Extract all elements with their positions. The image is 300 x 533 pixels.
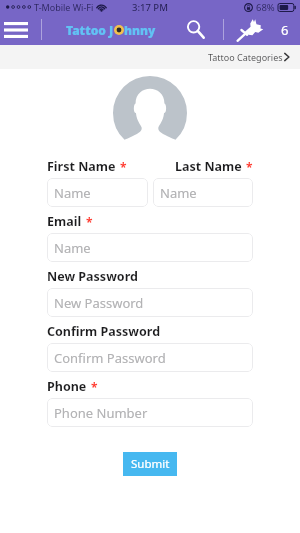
button[interactable]: Phone Number [47, 398, 253, 427]
button[interactable]: Search [179, 14, 211, 45]
staticText: Submit [131, 456, 170, 472]
button[interactable]: Name [153, 178, 253, 207]
staticText: Confirm Password [54, 349, 166, 367]
staticText: 68% [256, 1, 275, 14]
button[interactable]: Confirm Password [47, 343, 253, 372]
staticText: hnny [124, 22, 156, 38]
staticText: * [86, 214, 93, 230]
staticText: New Password [54, 294, 144, 312]
button[interactable]: Open navigation menu [0, 14, 31, 45]
staticText: Confirm Password [47, 323, 161, 340]
staticText: * [91, 379, 98, 395]
staticText: Tattoo Categories [208, 51, 283, 63]
staticText: Last Name [175, 158, 242, 175]
button[interactable]: Tattoo Categories [0, 45, 300, 69]
staticText: * [246, 159, 253, 175]
staticText: First Name [47, 158, 116, 175]
button[interactable]: Name [47, 178, 148, 207]
staticText: Phone [47, 378, 87, 395]
staticText: Name [54, 239, 91, 257]
button[interactable]: Tattoo machine [232, 14, 270, 45]
button[interactable]: Name [47, 233, 253, 262]
staticText: T-Mobile Wi-Fi [34, 1, 94, 13]
button[interactable]: 6 [270, 14, 300, 45]
staticText: Email [47, 213, 82, 230]
button[interactable]: New Password [47, 288, 253, 317]
staticText: Name [160, 184, 197, 202]
staticText: * [120, 159, 127, 175]
button[interactable]: Submit [123, 452, 177, 476]
staticText: 3:17 PM [132, 1, 168, 14]
staticText: Tattoo J [66, 22, 114, 38]
staticText: Phone Number [54, 404, 148, 422]
staticText: New Password [47, 268, 138, 285]
staticText: Name [54, 184, 91, 202]
staticText: 6 [281, 21, 289, 39]
